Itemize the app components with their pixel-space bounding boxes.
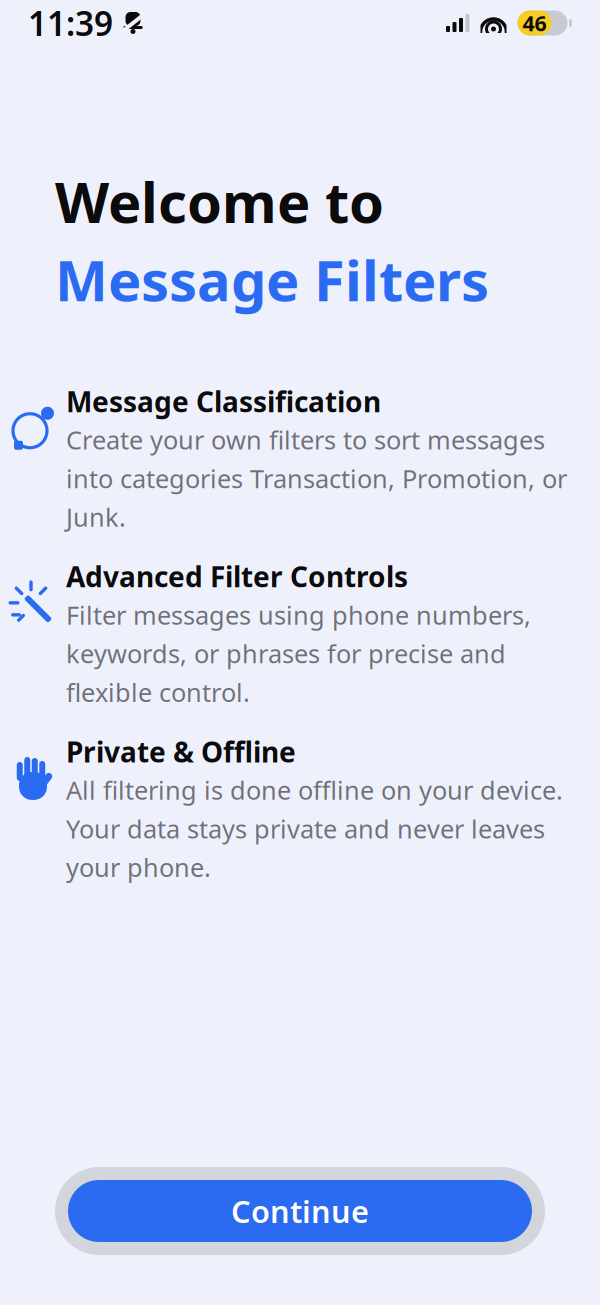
staticText: Message Classification: [66, 383, 381, 420]
staticText: Message Filters: [55, 242, 489, 317]
staticText: Filter messages using phone numbers, key…: [66, 598, 531, 709]
staticText: Create your own filters to sort messages…: [66, 423, 567, 534]
button[interactable]: Continue: [55, 1167, 545, 1255]
staticText: Private & Offline: [66, 733, 296, 770]
staticText: Continue: [231, 1191, 369, 1231]
staticText: 46: [522, 9, 546, 37]
staticText: All filtering is done offline on your de…: [66, 773, 563, 884]
staticText: Welcome to: [55, 164, 384, 238]
staticText: 11:39: [28, 1, 113, 45]
staticText: Advanced Filter Controls: [66, 558, 408, 595]
